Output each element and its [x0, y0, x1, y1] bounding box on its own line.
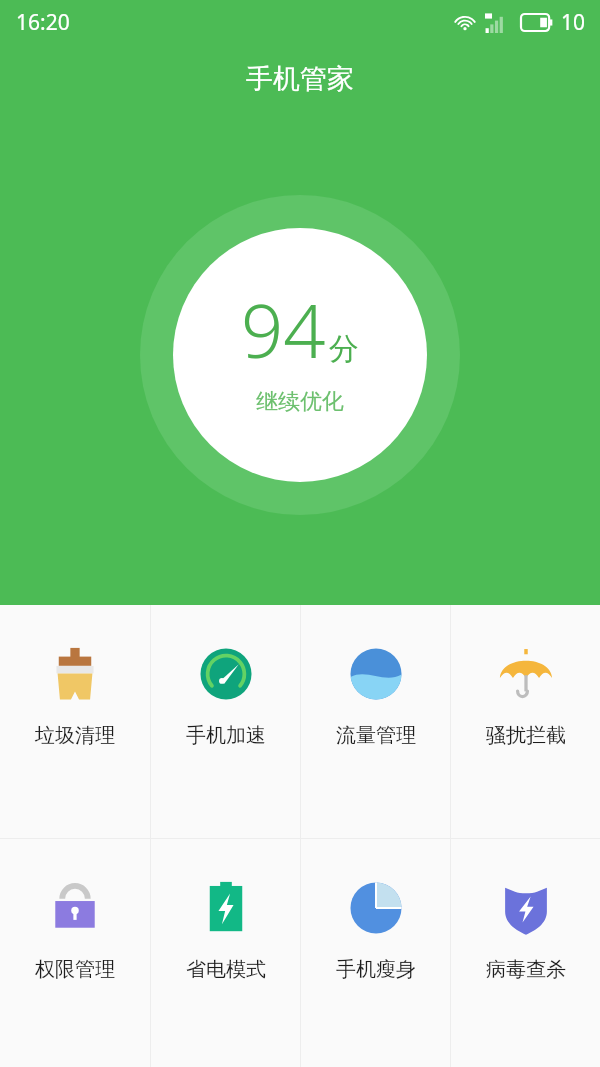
staticText: 骚扰拦截 — [486, 723, 566, 748]
button[interactable]: 垃圾清理 — [0, 605, 150, 838]
staticText: 手机管家 — [246, 62, 354, 96]
staticText: 10 — [561, 8, 586, 37]
staticText: 16:20 — [16, 8, 70, 37]
button[interactable]: 骚扰拦截 — [451, 605, 600, 838]
staticText: 省电模式 — [186, 957, 266, 982]
button[interactable]: 手机加速 — [151, 605, 300, 838]
button[interactable]: 94 — [140, 195, 460, 515]
staticText: 手机加速 — [186, 723, 266, 748]
other: Battery — [521, 14, 553, 31]
other: Wi-Fi — [454, 12, 476, 34]
staticText: 继续优化 — [256, 388, 344, 416]
staticText: 垃圾清理 — [35, 723, 115, 748]
staticText: 流量管理 — [336, 723, 416, 748]
staticText: 分 — [329, 330, 359, 368]
other: 4G signal — [485, 13, 512, 33]
staticText: 权限管理 — [35, 957, 115, 982]
staticText: 94 — [241, 279, 326, 380]
button[interactable]: 流量管理 — [301, 605, 450, 838]
button[interactable]: 权限管理 — [0, 839, 150, 1067]
button[interactable]: 手机瘦身 — [301, 839, 450, 1067]
staticText: 病毒查杀 — [486, 957, 566, 982]
button[interactable]: 病毒查杀 — [451, 839, 600, 1067]
staticText: 手机瘦身 — [336, 957, 416, 982]
button[interactable]: 省电模式 — [151, 839, 300, 1067]
